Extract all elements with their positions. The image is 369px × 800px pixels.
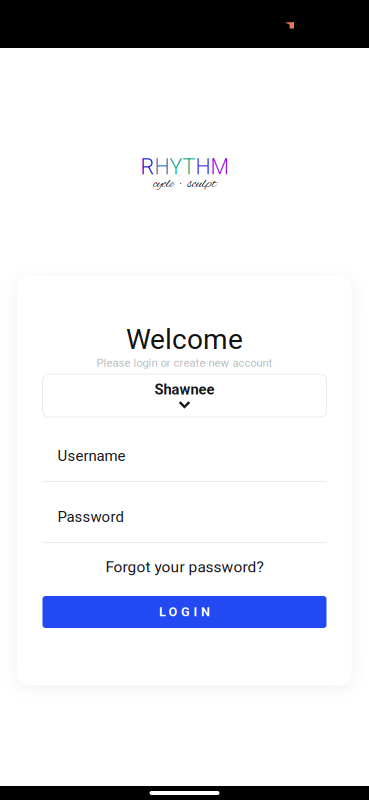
staticText: Password: [57, 508, 123, 526]
staticText: M: [210, 154, 228, 179]
staticText: LOGIN: [159, 605, 210, 619]
staticText: Welcome: [126, 323, 243, 356]
staticText: R: [140, 154, 154, 179]
staticText: cycle · sculpt: [153, 175, 216, 193]
staticText: Forgot your password?: [105, 558, 263, 576]
button[interactable]: Shawnee: [42, 374, 326, 417]
staticText: T: [182, 154, 195, 179]
button[interactable]: LOGIN: [42, 596, 326, 628]
staticText: Username: [57, 447, 125, 465]
staticText: Shawnee: [154, 381, 214, 398]
staticText: H: [154, 154, 169, 179]
button[interactable]: Forgot your password?: [42, 555, 326, 579]
staticText: Please login or create new account: [96, 356, 272, 370]
staticText: Y: [169, 154, 182, 179]
staticText: H: [195, 154, 210, 179]
